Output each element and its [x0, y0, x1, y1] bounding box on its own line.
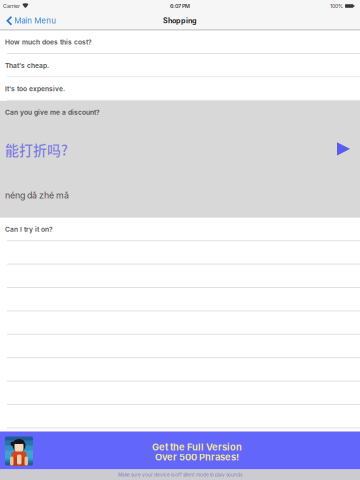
- staticText: 100%: [330, 3, 343, 9]
- staticText: Over 500 Phrases!: [155, 451, 239, 463]
- staticText: Can I try it on?: [5, 225, 53, 233]
- staticText: Can you give me a discount?: [5, 108, 100, 116]
- button[interactable]: Can I try it on?: [0, 218, 360, 241]
- button[interactable]: That's cheap.: [0, 54, 360, 77]
- staticText: It's too expensive.: [5, 85, 65, 93]
- staticText: Make sure your device is off silent mode…: [118, 472, 242, 477]
- staticText: 能打折吗?: [5, 139, 68, 160]
- staticText: néng dǎ zhé mǎ: [5, 190, 69, 201]
- staticText: Carrier: [3, 3, 20, 9]
- button[interactable]: Can you give me a discount?: [0, 101, 360, 218]
- staticText: 6:07 PM: [170, 3, 190, 9]
- staticText: That's cheap.: [5, 61, 49, 70]
- staticText: Get the Full Version: [152, 441, 242, 453]
- staticText: Main Menu: [14, 16, 56, 25]
- button[interactable]: Main Menu: [0, 12, 62, 29]
- button[interactable]: It's too expensive.: [0, 77, 360, 101]
- staticText: How much does this cost?: [5, 38, 92, 46]
- staticText: Shopping: [163, 16, 197, 25]
- button[interactable]: Get the Full Version: [0, 431, 360, 469]
- button[interactable]: How much does this cost?: [0, 31, 360, 54]
